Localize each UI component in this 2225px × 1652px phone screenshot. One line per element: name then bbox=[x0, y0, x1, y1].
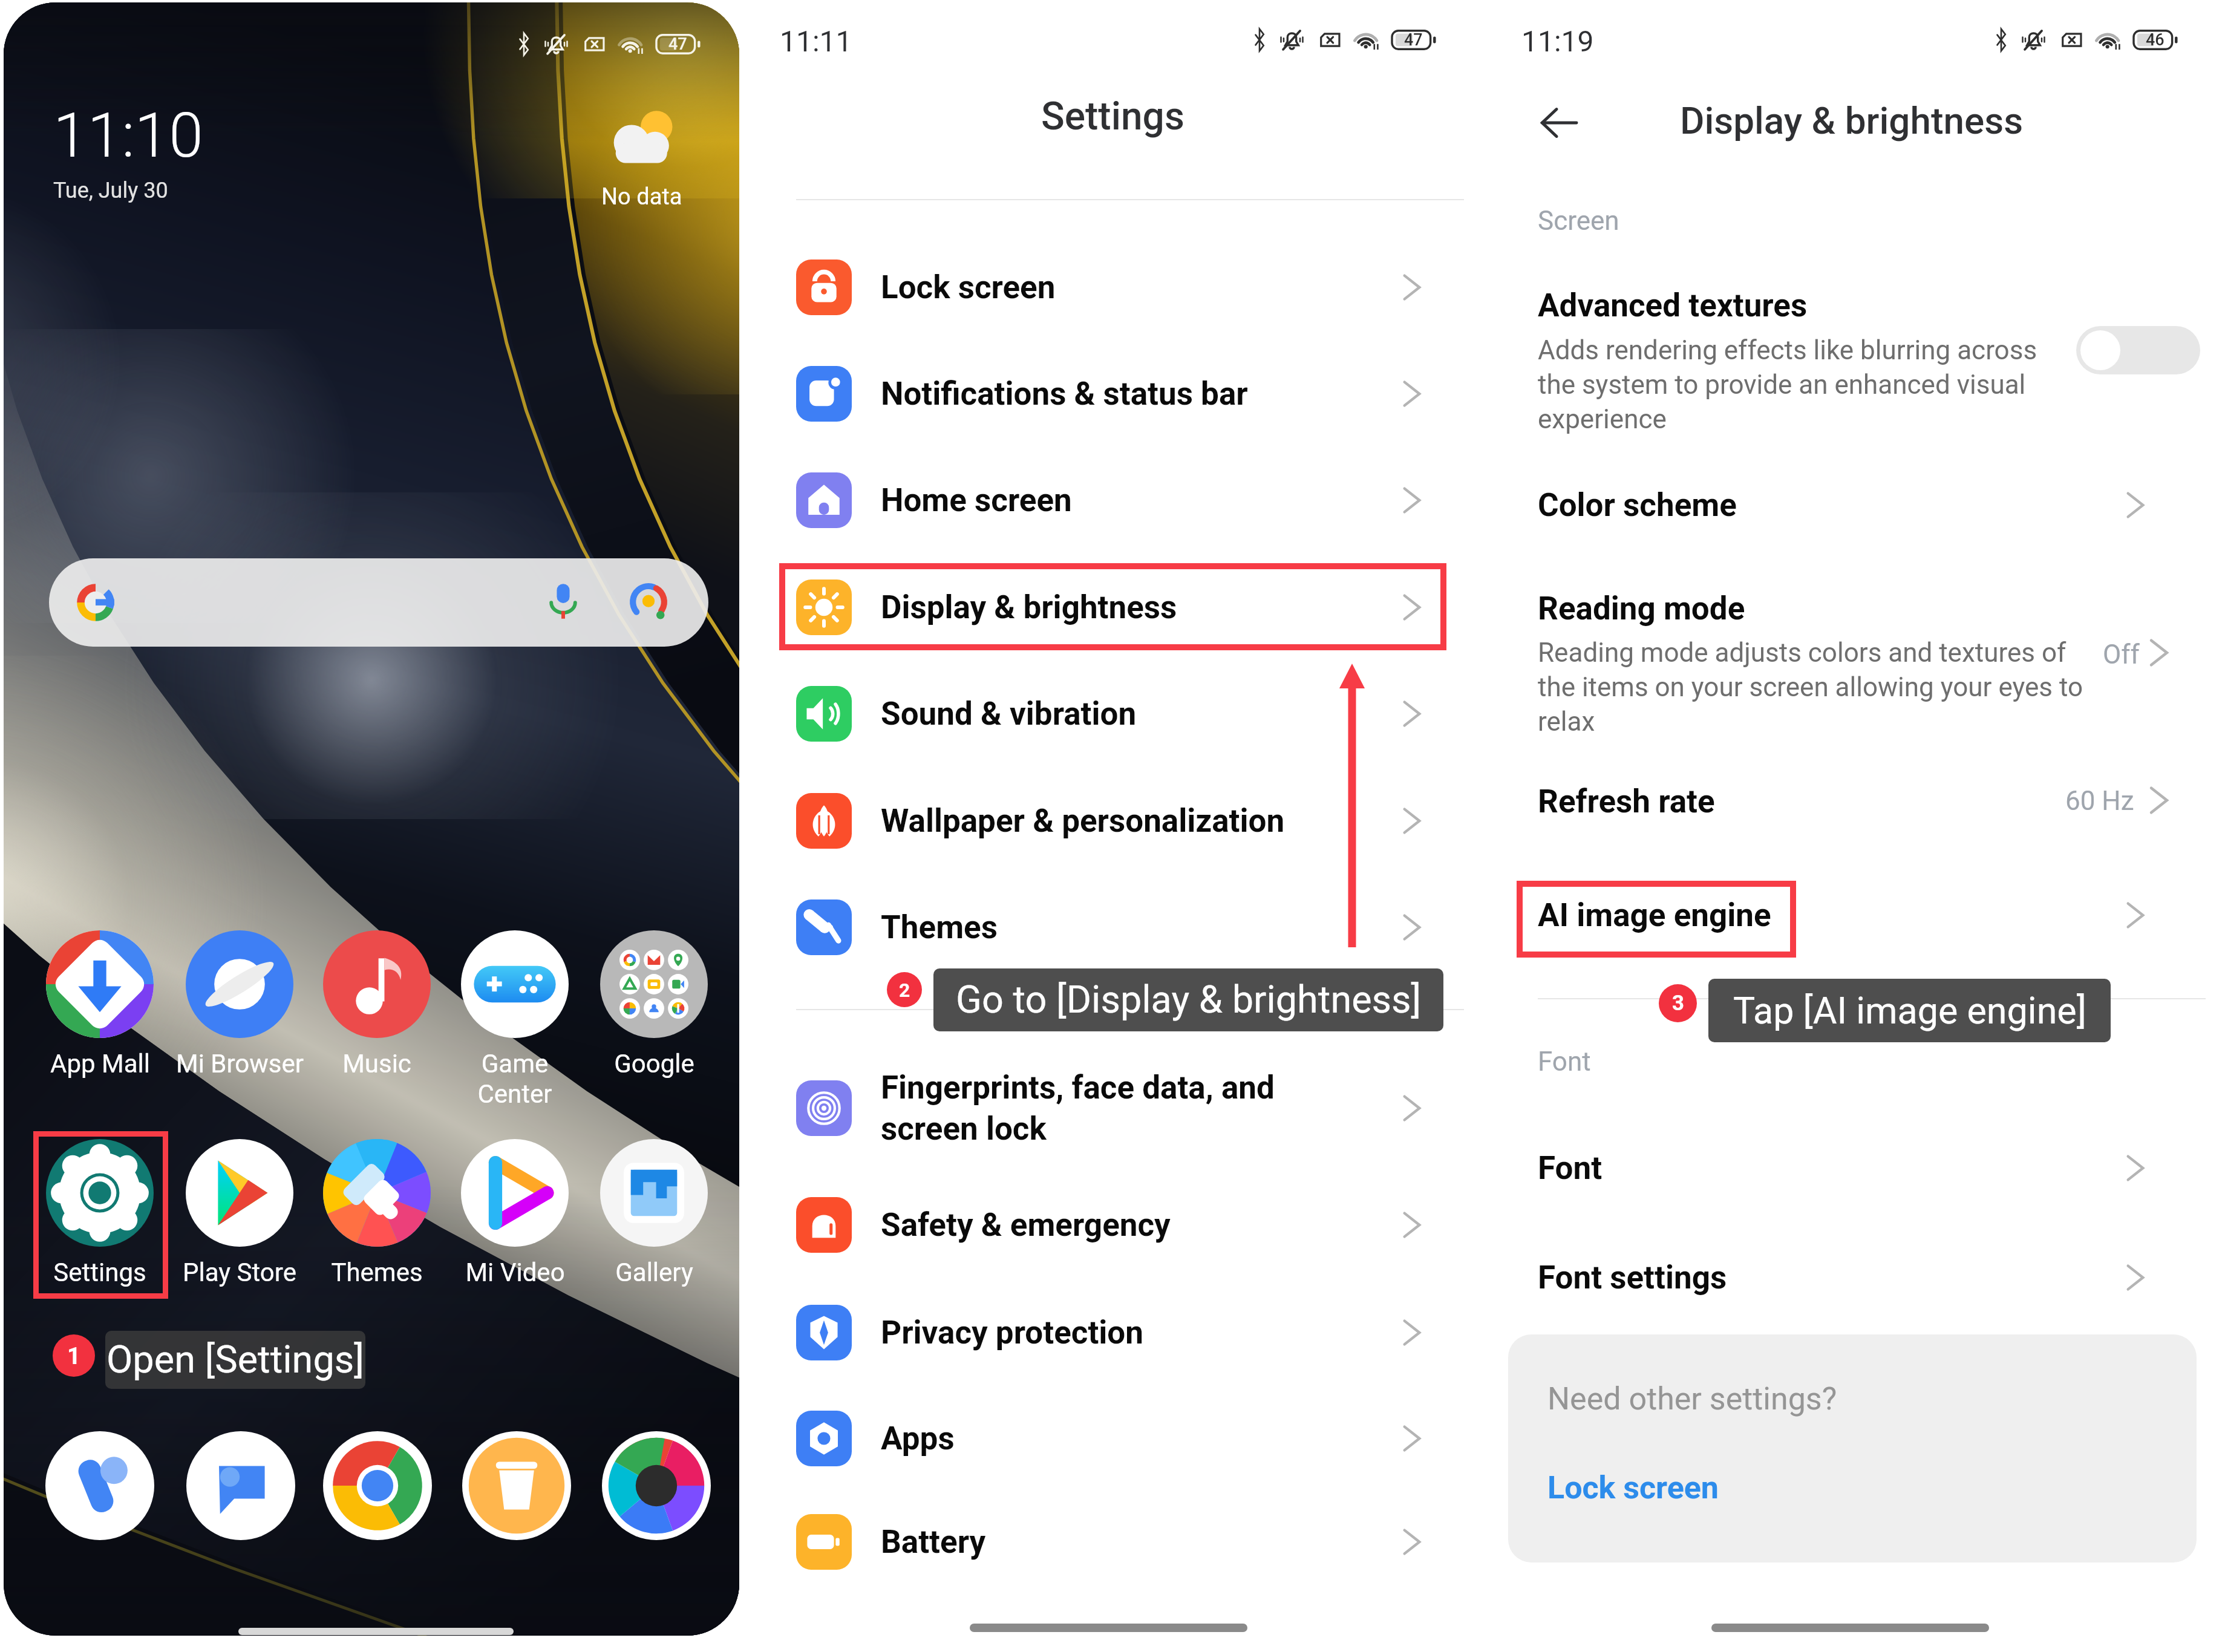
staticText: 11:19 bbox=[1521, 24, 1594, 58]
button[interactable]: Battery bbox=[742, 1497, 1483, 1587]
button[interactable]: Cleaner bbox=[462, 1431, 571, 1540]
button[interactable]: Settings bbox=[33, 1139, 166, 1287]
staticText: App Mall bbox=[50, 1049, 150, 1079]
staticText: Font settings bbox=[1538, 1259, 1727, 1296]
button[interactable]: Color scheme bbox=[1483, 469, 2225, 541]
staticText: Reading mode adjusts colors and textures… bbox=[1538, 637, 2100, 737]
button[interactable]: Google bbox=[587, 930, 720, 1079]
button[interactable]: Gallery bbox=[587, 1139, 720, 1287]
staticText: Game Center bbox=[477, 1049, 552, 1109]
staticText: Notifications & status bar bbox=[881, 375, 1248, 413]
staticText: No data bbox=[601, 183, 682, 211]
button[interactable]: Home screen bbox=[742, 455, 1483, 545]
staticText: Advanced textures bbox=[1538, 287, 1808, 324]
staticText: Wallpaper & personalization bbox=[881, 802, 1285, 840]
staticText: 47 bbox=[668, 34, 687, 54]
button[interactable]: Phone bbox=[45, 1431, 154, 1540]
button[interactable]: Messages bbox=[186, 1431, 295, 1540]
staticText: Display & brightness bbox=[881, 589, 1177, 626]
button[interactable]: Camera bbox=[602, 1431, 711, 1540]
staticText: Color scheme bbox=[1538, 486, 1737, 524]
staticText: Home screen bbox=[881, 482, 1072, 519]
button[interactable]: Themes bbox=[310, 1139, 443, 1287]
staticText: Privacy protection bbox=[881, 1314, 1143, 1351]
button[interactable]: Play Store bbox=[173, 1139, 306, 1287]
button[interactable]: Font settings bbox=[1483, 1241, 2225, 1314]
staticText: Sound & vibration bbox=[881, 695, 1137, 733]
button[interactable]: Mi Video bbox=[448, 1139, 581, 1287]
button[interactable]: Display & brightness bbox=[742, 563, 1483, 652]
button[interactable]: Notifications & status bar bbox=[742, 349, 1483, 439]
staticText: Refresh rate bbox=[1538, 783, 1715, 820]
staticText: Apps bbox=[881, 1420, 955, 1457]
button[interactable]: Themes bbox=[742, 883, 1483, 972]
staticText: Gallery bbox=[615, 1258, 693, 1287]
staticText: 60 Hz bbox=[2065, 785, 2134, 817]
staticText: Tue, July 30 bbox=[53, 178, 168, 203]
button[interactable]: AI image engine bbox=[1483, 879, 2225, 952]
staticText: Settings bbox=[1041, 94, 1184, 139]
button[interactable]: Mi Browser bbox=[173, 930, 306, 1079]
button[interactable]: Back bbox=[1538, 102, 1580, 144]
staticText: Fingerprints, face data, and screen lock bbox=[881, 1069, 1275, 1148]
button[interactable]: Fingerprints, face data, and screen lock bbox=[742, 1063, 1483, 1153]
staticText: Settings bbox=[53, 1258, 146, 1287]
staticText: Music bbox=[342, 1049, 411, 1079]
button[interactable]: Music bbox=[310, 930, 443, 1079]
staticText: 3 bbox=[1672, 991, 1684, 1016]
button[interactable]: App Mall bbox=[33, 930, 166, 1079]
button[interactable]: Apps bbox=[742, 1394, 1483, 1483]
staticText: Adds rendering effects like blurring acr… bbox=[1538, 335, 2058, 435]
staticText: Font bbox=[1538, 1149, 1603, 1187]
button[interactable]: Reading mode bbox=[1483, 569, 2225, 744]
staticText: Themes bbox=[881, 909, 998, 946]
staticText: 11:10 bbox=[53, 99, 203, 172]
button[interactable]: Advanced textures bbox=[1483, 273, 2225, 437]
button[interactable]: Chrome bbox=[323, 1431, 432, 1540]
staticText: Safety & emergency bbox=[881, 1206, 1171, 1244]
staticText: AI image engine bbox=[1538, 896, 1771, 934]
button[interactable]: Sound & vibration bbox=[742, 669, 1483, 759]
staticText: Off bbox=[2103, 639, 2140, 670]
staticText: Lock screen bbox=[881, 269, 1056, 306]
staticText: 1 bbox=[67, 1342, 81, 1370]
button[interactable]: Google search bbox=[49, 558, 708, 647]
staticText: Mi Video bbox=[465, 1258, 565, 1287]
button[interactable]: Wallpaper & personalization bbox=[742, 776, 1483, 866]
staticText: Go to [Display & brightness] bbox=[956, 978, 1422, 1022]
staticText: 11:11 bbox=[780, 24, 852, 58]
button[interactable]: Font bbox=[1483, 1132, 2225, 1204]
staticText: Reading mode bbox=[1538, 590, 1745, 627]
button[interactable]: Refresh rate bbox=[1483, 765, 2225, 837]
staticText: 46 bbox=[2146, 30, 2165, 50]
staticText: Mi Browser bbox=[176, 1049, 304, 1079]
button[interactable]: Safety & emergency bbox=[742, 1180, 1483, 1270]
staticText: Screen bbox=[1538, 205, 1619, 237]
button[interactable]: Advanced textures toggle bbox=[2076, 326, 2200, 374]
staticText: Need other settings? bbox=[1547, 1380, 1837, 1417]
staticText: 2 bbox=[899, 979, 910, 1001]
button[interactable]: Privacy protection bbox=[742, 1288, 1483, 1377]
button[interactable]: Lock screen bbox=[742, 243, 1483, 332]
staticText: Open [Settings] bbox=[106, 1337, 364, 1382]
staticText: Display & brightness bbox=[1680, 99, 2024, 143]
staticText: Tap [AI image engine] bbox=[1733, 989, 2086, 1032]
staticText: Play Store bbox=[183, 1258, 296, 1287]
staticText: Themes bbox=[331, 1258, 423, 1287]
staticText: Google bbox=[614, 1049, 694, 1079]
button[interactable]: Lock screen bbox=[1547, 1469, 1719, 1506]
staticText: Battery bbox=[881, 1523, 986, 1561]
button[interactable]: Game Center bbox=[448, 930, 581, 1109]
staticText: 47 bbox=[1404, 30, 1423, 50]
staticText: Lock screen bbox=[1547, 1469, 1719, 1506]
staticText: Font bbox=[1538, 1046, 1591, 1077]
